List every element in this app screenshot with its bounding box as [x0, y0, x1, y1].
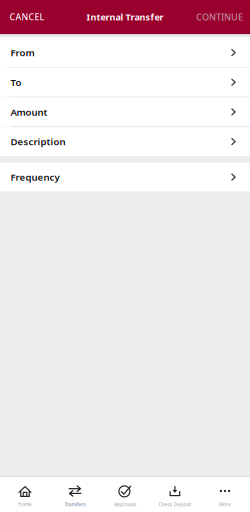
- staticText: Approvals: [114, 501, 136, 507]
- button[interactable]: CONTINUE: [188, 0, 250, 34]
- staticText: Home: [18, 501, 32, 507]
- button[interactable]: CANCEL: [0, 0, 52, 34]
- staticText: CANCEL: [9, 11, 44, 23]
- staticText: Amount: [10, 105, 47, 118]
- staticText: Frequency: [10, 171, 59, 184]
- staticText: From: [10, 46, 34, 59]
- staticText: Transfers: [64, 501, 85, 507]
- button[interactable]: To: [0, 68, 250, 97]
- button[interactable]: Transfers: [50, 477, 100, 512]
- button[interactable]: Check Deposit: [150, 477, 200, 512]
- button[interactable]: Description: [0, 127, 250, 156]
- button[interactable]: More: [200, 477, 250, 512]
- button[interactable]: Home: [0, 477, 50, 512]
- button[interactable]: Approvals: [100, 477, 150, 512]
- button[interactable]: From: [0, 38, 250, 67]
- staticText: More: [219, 501, 231, 507]
- button[interactable]: Amount: [0, 97, 250, 126]
- staticText: CONTINUE: [196, 11, 243, 23]
- staticText: Description: [10, 135, 65, 148]
- staticText: To: [10, 76, 21, 89]
- staticText: Internal Transfer: [86, 11, 163, 23]
- button[interactable]: Frequency: [0, 163, 250, 192]
- staticText: Check Deposit: [158, 501, 191, 507]
